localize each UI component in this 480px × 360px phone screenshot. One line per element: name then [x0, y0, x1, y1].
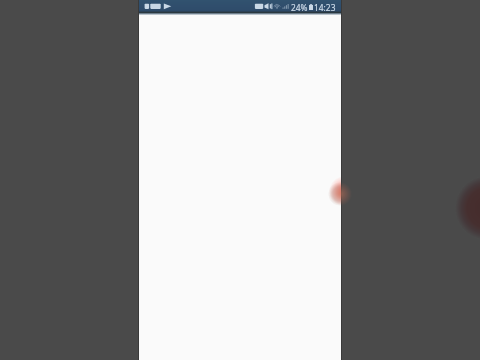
button[interactable]: Open panel [317, 177, 341, 207]
staticText: 24% [291, 2, 308, 13]
staticText: 14:23 [314, 2, 336, 13]
button[interactable]: Page content [139, 15, 341, 360]
